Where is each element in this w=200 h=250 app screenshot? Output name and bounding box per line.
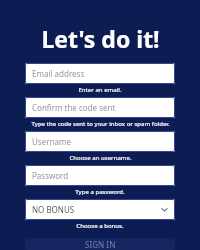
staticText: Password (32, 170, 168, 181)
button[interactable]: Password (25, 165, 175, 186)
button[interactable]: Email address (25, 63, 175, 84)
staticText: Let's do it! (41, 23, 160, 54)
button[interactable]: NO BONUS (25, 199, 175, 220)
staticText: Username (32, 136, 168, 147)
staticText: Email address (32, 68, 168, 79)
other: Open bonus dropdown (161, 206, 168, 213)
button[interactable]: SIGN IN (25, 238, 175, 250)
staticText: Enter an email. (78, 86, 122, 94)
staticText: NO BONUS (32, 204, 161, 215)
staticText: Type a password. (75, 188, 125, 196)
staticText: Choose an username. (69, 154, 132, 162)
staticText: SIGN IN (85, 239, 116, 250)
staticText: Type the code sent to your inbox or spam… (31, 120, 170, 128)
button[interactable]: Username (25, 131, 175, 152)
staticText: Choose a bonus. (76, 222, 124, 230)
button[interactable]: Confirm the code sent (25, 97, 175, 118)
staticText: Confirm the code sent (32, 102, 168, 113)
